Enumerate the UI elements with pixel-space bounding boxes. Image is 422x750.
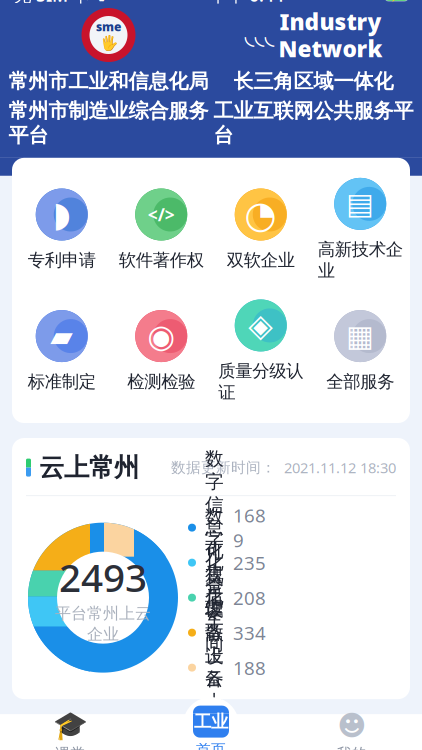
- button[interactable]: 工业: [141, 710, 281, 750]
- button[interactable]: 🎓: [0, 710, 141, 750]
- staticText: 工业: [194, 711, 228, 732]
- staticText: ▦: [346, 319, 374, 353]
- staticText: 长三角区域一体化: [233, 69, 393, 94]
- staticText: 188: [233, 655, 266, 680]
- staticText: 235: [233, 550, 266, 575]
- button[interactable]: ▦: [310, 310, 410, 392]
- staticText: 双软企业: [227, 249, 295, 271]
- button[interactable]: ▤: [310, 178, 410, 281]
- staticText: 工业互联网公共服务平台: [213, 99, 413, 148]
- staticText: 课堂: [55, 745, 85, 750]
- staticText: 🖐: [99, 35, 117, 51]
- button[interactable]: ☻: [281, 710, 422, 750]
- staticText: 我的: [337, 744, 367, 750]
- staticText: 2021.11.12 18:30: [284, 458, 396, 477]
- staticText: 常州市工业和信息化局: [8, 69, 208, 94]
- staticText: 首页: [196, 741, 226, 750]
- staticText: Network: [278, 33, 382, 64]
- staticText: Industry: [279, 6, 381, 36]
- staticText: ◉: [147, 318, 175, 354]
- staticText: 我的: [337, 744, 367, 750]
- button[interactable]: ◈: [211, 299, 310, 403]
- button[interactable]: ▰: [12, 310, 111, 392]
- staticText: 数字信息化售后: [205, 447, 224, 608]
- button[interactable]: ◔: [211, 188, 310, 271]
- staticText: ◗: [53, 195, 71, 234]
- staticText: ⚡: [389, 0, 404, 2]
- staticText: 专利申请: [28, 249, 96, 271]
- button[interactable]: </>: [111, 188, 211, 271]
- staticText: 云上常州: [39, 452, 139, 483]
- button[interactable]: ◗: [12, 188, 111, 271]
- staticText: 常州市制造业综合服务平台: [8, 99, 208, 148]
- staticText: ▰: [50, 319, 73, 353]
- staticText: 🎓: [53, 710, 88, 742]
- staticText: ᯤ: [90, 0, 109, 6]
- staticText: 数字化管理: [205, 505, 224, 620]
- button[interactable]: ◉: [111, 310, 211, 392]
- staticText: 课堂: [55, 745, 85, 750]
- staticText: 334: [233, 620, 266, 645]
- staticText: 高新技术企业: [318, 239, 403, 281]
- button[interactable]: 工业: [141, 710, 281, 750]
- staticText: 工业: [194, 711, 228, 732]
- staticText: 平台常州上云: [55, 604, 151, 623]
- staticText: 🎓: [53, 710, 88, 742]
- staticText: ◔: [244, 193, 277, 236]
- staticText: sme: [96, 19, 121, 35]
- staticText: 无 SIM 卡: [14, 0, 90, 6]
- staticText: </>: [148, 203, 175, 226]
- staticText: 检测检验: [127, 371, 195, 392]
- staticText: ◟◟◟: [244, 21, 274, 49]
- staticText: 全设备上云: [205, 575, 224, 690]
- staticText: 208: [233, 585, 266, 610]
- staticText: 2493: [59, 551, 147, 603]
- staticText: 首页: [196, 741, 226, 750]
- staticText: 数据更新时间：: [171, 459, 276, 477]
- button[interactable]: 🎓: [0, 710, 141, 750]
- staticText: ☻: [337, 710, 366, 741]
- staticText: ▤: [346, 187, 374, 220]
- staticText: ☻: [337, 710, 366, 741]
- staticText: 全部服务: [326, 371, 394, 392]
- staticText: 软件著作权: [119, 249, 204, 271]
- staticText: 企业: [87, 624, 119, 644]
- staticText: 零散设备上云: [205, 599, 224, 736]
- button[interactable]: ☻: [281, 710, 422, 750]
- staticText: 质量分级认证: [218, 360, 303, 403]
- staticText: ◈: [248, 307, 273, 344]
- staticText: 1689: [233, 503, 266, 552]
- staticText: 下午 6:44: [210, 0, 284, 6]
- staticText: 可视化车间: [205, 540, 224, 655]
- staticText: 标准制定: [28, 371, 96, 392]
